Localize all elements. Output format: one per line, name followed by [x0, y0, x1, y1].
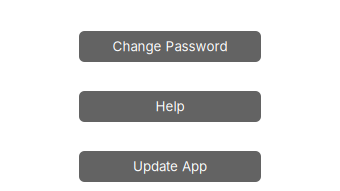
button[interactable]: Help	[79, 91, 261, 122]
staticText: Change Password	[112, 38, 227, 54]
staticText: Update App	[133, 158, 207, 174]
staticText: Help	[155, 98, 184, 114]
button[interactable]: Change Password	[79, 31, 261, 62]
button[interactable]: Update App	[79, 151, 261, 182]
